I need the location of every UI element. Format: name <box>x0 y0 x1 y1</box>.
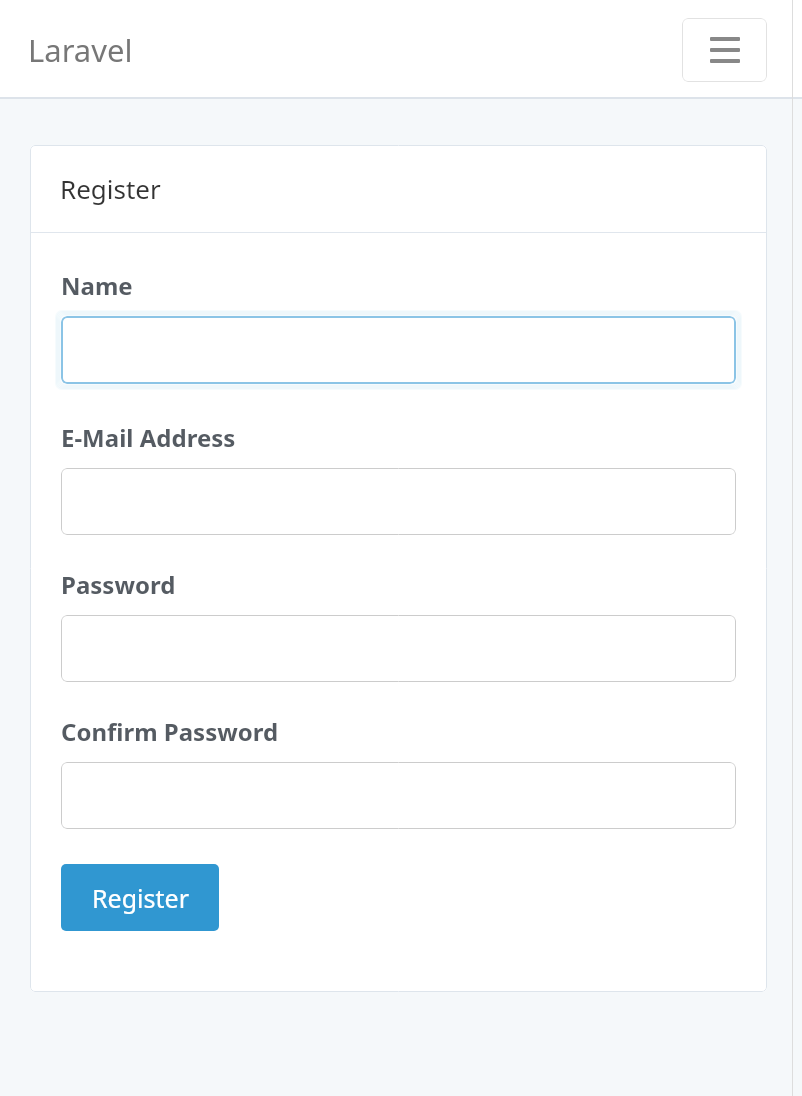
button[interactable]: Register <box>61 864 219 931</box>
staticText: Password <box>61 568 176 601</box>
staticText: E-Mail Address <box>61 421 236 454</box>
staticText: Confirm Password <box>61 715 279 748</box>
button[interactable] <box>61 468 736 535</box>
button[interactable] <box>61 316 736 384</box>
staticText: Name <box>61 269 133 302</box>
button[interactable]: Laravel <box>28 29 133 71</box>
staticText: Register <box>60 171 161 206</box>
button[interactable] <box>61 762 736 829</box>
staticText: Register <box>92 881 189 915</box>
button[interactable] <box>61 615 736 682</box>
button[interactable]: Toggle navigation <box>682 18 767 82</box>
